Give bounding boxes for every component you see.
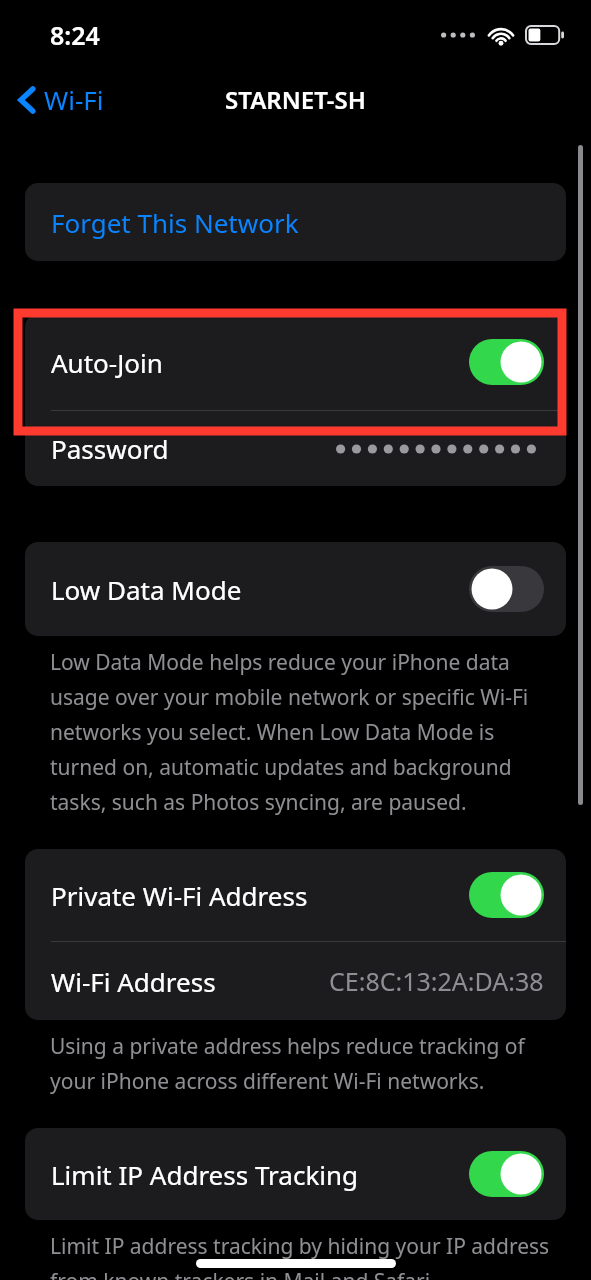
staticText: Using a private address helps reduce tra… [50,1032,551,1096]
staticText: Private Wi-Fi Address [51,878,308,913]
button[interactable]: Toggle on [469,339,544,385]
staticText: Low Data Mode helps reduce your iPhone d… [50,648,551,817]
button[interactable]: Password [25,411,566,486]
staticText: Wi-Fi Address [51,964,216,999]
button[interactable]: Forget This Network [25,183,566,261]
staticText: CE:8C:13:2A:DA:38 [329,964,544,998]
staticText: 8:24 [50,18,100,52]
button[interactable]: Toggle on [469,872,544,918]
button[interactable]: Limit IP Address Tracking [25,1128,566,1220]
button[interactable]: Low Data Mode [25,542,566,636]
staticText: Wi-Fi [44,82,104,117]
button[interactable]: Wi-Fi Address [25,942,566,1020]
staticText: Limit IP Address Tracking [51,1157,359,1192]
button[interactable]: Toggle off [469,566,544,612]
button[interactable]: Toggle on [469,1151,544,1197]
button[interactable]: Auto-Join [25,314,566,410]
staticText: STARNET-SH [225,83,366,116]
staticText: Limit IP address tracking by hiding your… [50,1232,551,1280]
staticText: Auto-Join [51,345,163,380]
button[interactable]: Private Wi-Fi Address [25,849,566,941]
button[interactable]: Wi-Fi [12,78,110,121]
staticText: Password [51,431,169,466]
staticText: Forget This Network [51,205,299,240]
staticText: Low Data Mode [51,572,242,607]
